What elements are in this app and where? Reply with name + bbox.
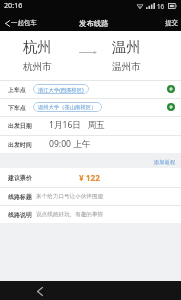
staticText: 建议票价 xyxy=(8,174,32,181)
staticText: 下车点 xyxy=(8,104,26,111)
staticText: 说点线路好玩、有趣的事情 xyxy=(36,211,104,218)
staticText: 杭州 xyxy=(23,38,52,56)
button[interactable]: 杭州 xyxy=(0,31,75,73)
button[interactable]: 添加返程 xyxy=(149,157,181,168)
staticText: 09:00 上午 xyxy=(49,138,91,150)
staticText: 16 xyxy=(157,2,165,10)
staticText: 线路说明 xyxy=(8,211,32,218)
staticText: 浙江大学(西溪校区) xyxy=(38,86,84,93)
staticText: 线路标题 xyxy=(8,193,32,200)
button[interactable]: 线路说明 xyxy=(0,205,181,223)
button[interactable]: 出发时间 xyxy=(0,135,181,153)
button[interactable]: 提交 xyxy=(162,16,181,30)
button[interactable]: 建议票价 xyxy=(0,168,181,186)
button[interactable]: 上车点 xyxy=(0,80,181,98)
button[interactable]: 线路标题 xyxy=(0,187,181,205)
staticText: ¥ 122 xyxy=(79,172,100,183)
button[interactable]: 一起包车 xyxy=(0,17,43,29)
staticText: 杭州市 xyxy=(23,61,52,73)
button[interactable]: Add stop xyxy=(167,85,175,93)
staticText: 20:16 xyxy=(4,0,23,10)
staticText: 出发日期 xyxy=(8,122,32,129)
button[interactable]: Add stop xyxy=(167,103,175,111)
staticText: 温州市 xyxy=(112,61,141,73)
button[interactable]: Back xyxy=(32,283,48,299)
button[interactable]: 出发日期 xyxy=(0,116,181,134)
button[interactable]: 下车点 xyxy=(0,98,181,116)
button[interactable]: 温州 xyxy=(82,31,170,73)
staticText: 温州 xyxy=(112,38,141,56)
staticText: 上车点 xyxy=(8,86,26,93)
staticText: 出发时间 xyxy=(8,141,32,148)
staticText: 来个给力口号让小伙伴围观 xyxy=(36,193,104,200)
staticText: 1月16日 周五 xyxy=(49,119,105,131)
staticText: 发布线路 xyxy=(79,19,109,28)
staticText: 温州大学（茶山南校区） xyxy=(38,104,97,111)
staticText: 一起包车 xyxy=(11,19,37,27)
